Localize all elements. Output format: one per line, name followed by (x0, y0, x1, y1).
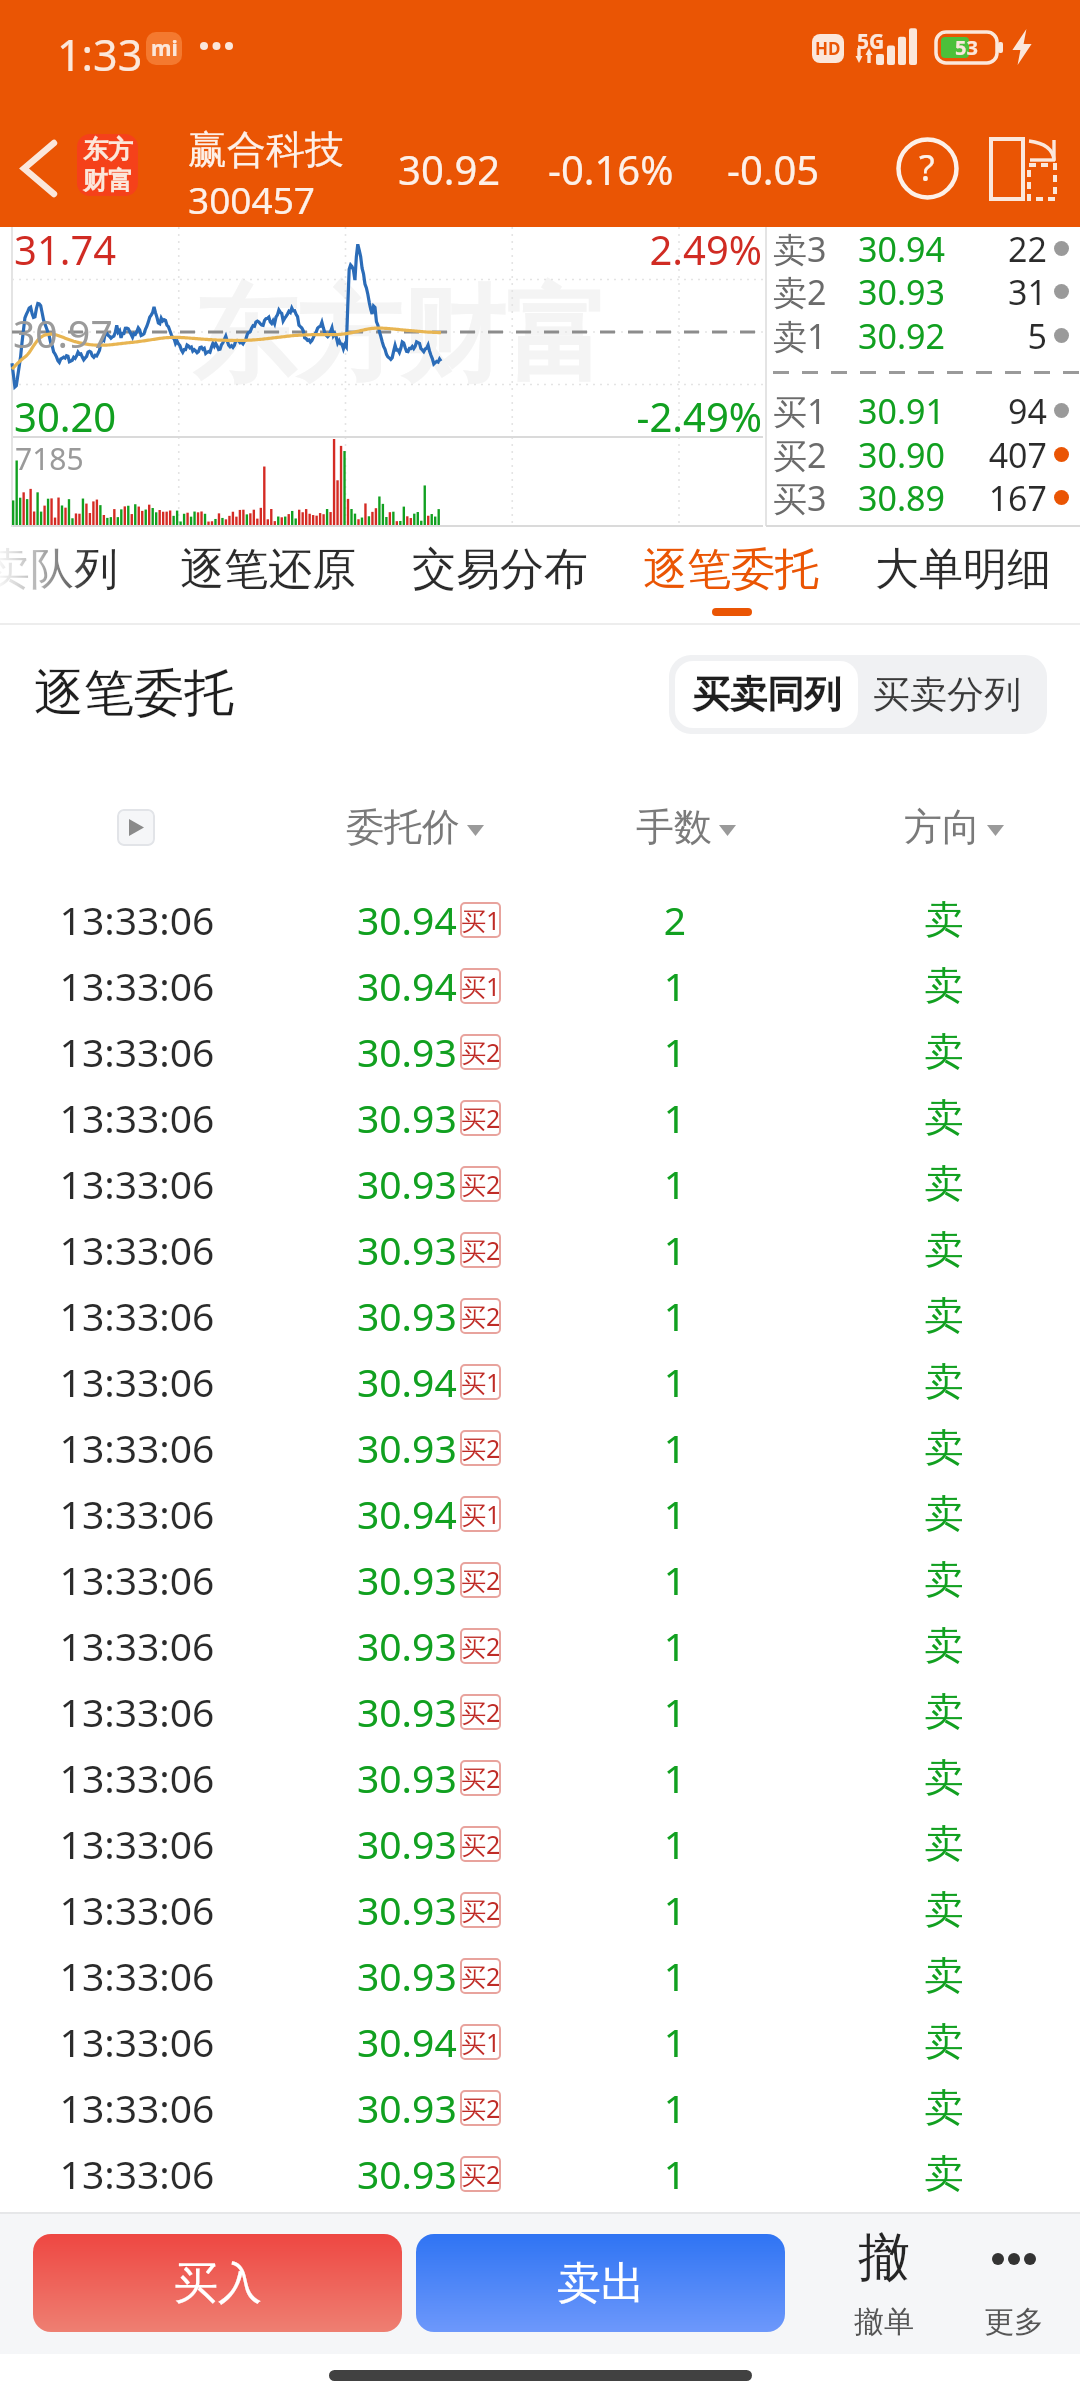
button[interactable]: 逐笔还原 (168, 527, 368, 625)
staticText: 卖 (844, 1225, 1044, 1274)
staticText: 卖 (844, 1555, 1044, 1604)
button[interactable]: 方向 (899, 792, 1009, 862)
staticText: 卖 (844, 1489, 1044, 1538)
staticText: 1 (575, 1619, 775, 1672)
staticText: 买1 (461, 903, 501, 937)
staticText: 买2 (461, 2091, 501, 2125)
staticText: 买2 (461, 1695, 501, 1729)
staticText: 买2 (461, 1959, 501, 1993)
staticText: 13:33:06 (27, 1157, 247, 1210)
staticText: 买1 (773, 388, 827, 432)
staticText: -2.49% (563, 389, 762, 443)
staticText: 卖 (844, 1357, 1044, 1406)
button[interactable]: 卖队列 (0, 527, 130, 625)
staticText: 卖 (844, 1159, 1044, 1208)
button[interactable]: 大单明细 (863, 527, 1063, 625)
button[interactable]: 13:33:06 (0, 1744, 1080, 1810)
staticText: 30.90 (825, 432, 945, 476)
staticText: 1 (575, 1553, 775, 1606)
button[interactable]: 13:33:06 (0, 2074, 1080, 2140)
button[interactable]: 13:33:06 (0, 1150, 1080, 1216)
staticText: 30.89 (825, 475, 945, 519)
button[interactable]: More (954, 2212, 1074, 2354)
staticText: 1 (575, 1421, 775, 1474)
staticText: 30.93 (357, 1289, 457, 1342)
staticText: mi (151, 34, 178, 63)
staticText: 卖 (844, 1291, 1044, 1340)
staticText: 13:33:06 (27, 1355, 247, 1408)
button[interactable]: 买卖同列 (675, 661, 858, 728)
button[interactable]: 卖出 (416, 2234, 785, 2332)
staticText: 1 (575, 1883, 775, 1936)
button[interactable]: Back (0, 110, 78, 227)
button[interactable]: 13:33:06 (0, 1876, 1080, 1942)
staticText: 13:33:06 (27, 959, 247, 1012)
staticText: 卖 (844, 1753, 1044, 1802)
staticText: 1 (575, 1091, 775, 1144)
staticText: 卖 (844, 1687, 1044, 1736)
staticText: 卖 (844, 1423, 1044, 1472)
staticText: 财富 (83, 165, 133, 196)
button[interactable]: 13:33:06 (0, 1810, 1080, 1876)
staticText: 买1 (461, 969, 501, 1003)
button[interactable]: 13:33:06 (0, 1348, 1080, 1414)
button[interactable]: 13:33:06 (0, 1018, 1080, 1084)
staticText: 31 (957, 269, 1047, 313)
staticText: 1 (575, 1949, 775, 2002)
staticText: 方向 (904, 803, 980, 851)
button[interactable]: 13:33:06 (0, 1942, 1080, 2008)
button[interactable]: 买卖分列 (859, 661, 1035, 728)
staticText: 30.93 (357, 1817, 457, 1870)
button[interactable]: 13:33:06 (0, 1612, 1080, 1678)
staticText: 13:33:06 (27, 2081, 247, 2134)
staticText: 31.74 (14, 222, 117, 276)
button[interactable]: 13:33:06 (0, 952, 1080, 1018)
button[interactable]: 13:33:06 (0, 1546, 1080, 1612)
button[interactable]: 13:33:06 (0, 1678, 1080, 1744)
staticText: 卖1 (773, 313, 827, 357)
staticText: 卖出 (557, 2256, 645, 2311)
staticText: 买2 (773, 432, 827, 476)
staticText: 买1 (461, 1497, 501, 1531)
button[interactable]: 逐笔委托 (631, 527, 831, 625)
staticText: 1 (575, 1355, 775, 1408)
staticText: 逐笔委托 (34, 662, 234, 725)
button[interactable]: 13:33:06 (0, 1282, 1080, 1348)
button[interactable]: Play live updates (117, 809, 155, 846)
staticText: 30.93 (357, 2147, 457, 2200)
button[interactable]: Help (877, 110, 977, 227)
staticText: 买卖分列 (873, 671, 1021, 718)
staticText: 5G (857, 27, 885, 56)
button[interactable]: 13:33:06 (0, 1084, 1080, 1150)
button[interactable]: 撤 (824, 2212, 944, 2354)
button[interactable]: 委托价 (340, 792, 490, 862)
staticText: 买3 (773, 475, 827, 519)
staticText: 1 (575, 2081, 775, 2134)
staticText: 1 (575, 1025, 775, 1078)
staticText: 买入 (174, 2256, 262, 2311)
button[interactable]: 13:33:06 (0, 1480, 1080, 1546)
staticText: 买1 (461, 2025, 501, 2059)
staticText: HD (815, 37, 841, 60)
button[interactable]: 买入 (33, 2234, 402, 2332)
button[interactable]: 13:33:06 (0, 1216, 1080, 1282)
button[interactable]: 13:33:06 (0, 2140, 1080, 2206)
button[interactable]: Rotate to landscape (966, 110, 1080, 227)
button[interactable]: 交易分布 (400, 527, 600, 625)
button[interactable]: 13:33:06 (0, 886, 1080, 952)
staticText: 买2 (461, 2157, 501, 2191)
button[interactable]: 13:33:06 (0, 1414, 1080, 1480)
staticText: 22 (957, 226, 1047, 270)
staticText: 13:33:06 (27, 1553, 247, 1606)
staticText: -0.16% (548, 142, 674, 196)
staticText: 30.93 (357, 1949, 457, 2002)
staticText: 卖 (844, 2083, 1044, 2132)
button[interactable]: 手数 (631, 792, 741, 862)
staticText: 13:33:06 (27, 1817, 247, 1870)
staticText: 30.93 (357, 1751, 457, 1804)
staticText: 卖 (844, 1093, 1044, 1142)
staticText: 买2 (461, 1563, 501, 1597)
staticText: 13:33:06 (27, 1091, 247, 1144)
button[interactable]: 13:33:06 (0, 2008, 1080, 2074)
staticText: 卖2 (773, 269, 827, 313)
